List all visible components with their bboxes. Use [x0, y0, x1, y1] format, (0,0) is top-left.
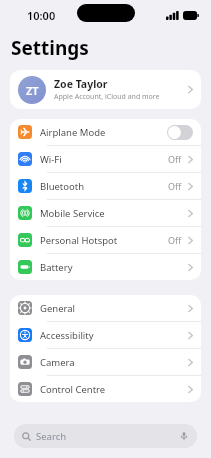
button[interactable]: Camera: [10, 349, 201, 375]
staticText: Wi-Fi: [40, 153, 168, 166]
staticText: Zoe Taylor: [54, 77, 108, 91]
button[interactable]: Airplane Mode toggle, off: [167, 125, 193, 140]
button[interactable]: Airplane Mode: [10, 119, 201, 145]
staticText: Search: [36, 430, 179, 443]
staticText: Airplane Mode: [40, 126, 167, 139]
staticText: Off: [168, 153, 182, 165]
button[interactable]: Wi-Fi: [10, 146, 201, 172]
button[interactable]: General: [10, 295, 201, 321]
button[interactable]: Mobile Service: [10, 200, 201, 226]
staticText: Personal Hotspot: [40, 234, 168, 247]
staticText: Battery: [40, 261, 188, 274]
staticText: Control Centre: [40, 383, 188, 396]
button[interactable]: Personal Hotspot: [10, 227, 201, 253]
staticText: Settings: [11, 35, 89, 61]
staticText: 10:00: [27, 8, 56, 23]
staticText: Bluetooth: [40, 180, 168, 193]
staticText: Camera: [40, 356, 188, 369]
staticText: General: [40, 302, 188, 315]
staticText: Accessibility: [40, 329, 188, 342]
staticText: Off: [168, 234, 182, 246]
button[interactable]: Control Centre: [10, 376, 201, 402]
button[interactable]: Voice search: [179, 431, 189, 441]
staticText: Mobile Service: [40, 207, 188, 220]
button[interactable]: Bluetooth: [10, 173, 201, 199]
button[interactable]: Search: [14, 424, 197, 448]
staticText: Off: [168, 180, 182, 192]
button[interactable]: ZT: [10, 70, 201, 109]
staticText: Apple Account, iCloud and more: [54, 92, 160, 102]
button[interactable]: Battery: [10, 254, 201, 280]
button[interactable]: Accessibility: [10, 322, 201, 348]
staticText: ZT: [26, 83, 39, 98]
